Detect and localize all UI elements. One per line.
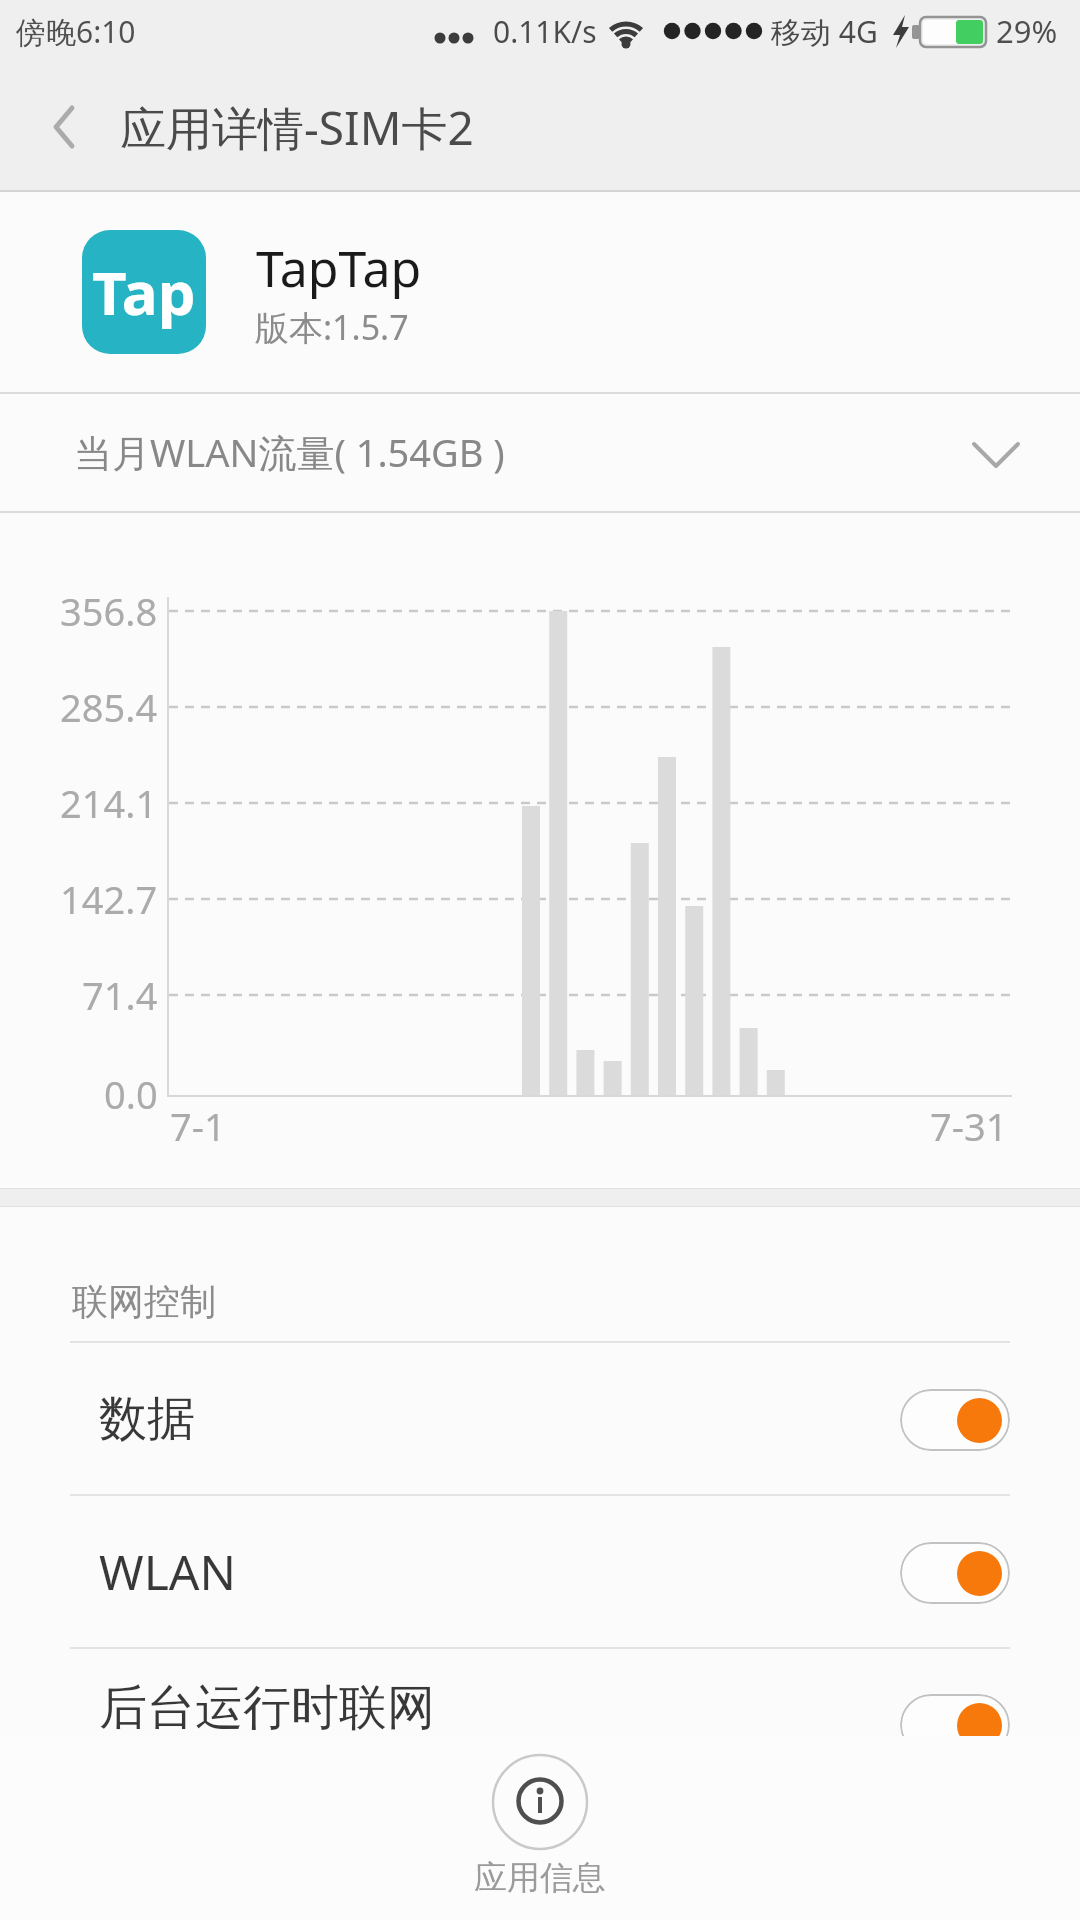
staticText: TapTap xyxy=(256,234,422,302)
staticText: 142.7 xyxy=(60,873,158,925)
staticText: 移动 4G xyxy=(771,11,878,52)
button[interactable]: 数据 xyxy=(0,1343,1080,1494)
button[interactable] xyxy=(900,1389,1010,1451)
button[interactable] xyxy=(900,1694,1010,1756)
staticText: 29% xyxy=(996,10,1058,52)
staticText: 356.8 xyxy=(60,585,158,637)
staticText: 0.11K/s xyxy=(493,11,597,52)
staticText: 214.1 xyxy=(60,777,158,829)
staticText: 应用信息 xyxy=(474,1857,606,1899)
staticText: 应用详情-SIM卡2 xyxy=(120,96,474,159)
button[interactable]: WLAN xyxy=(0,1496,1080,1647)
button[interactable]: 当月WLAN流量( 1.54GB ) xyxy=(0,393,1080,511)
staticText: 后台运行时联网 xyxy=(99,1678,435,1738)
button[interactable]: 后台运行时联网 xyxy=(0,1649,1080,1800)
staticText: 联网控制 xyxy=(72,1279,216,1324)
staticText: Tap xyxy=(92,251,196,333)
staticText: 71.4 xyxy=(82,969,158,1021)
staticText: 傍晚6:10 xyxy=(16,11,136,52)
staticText: 当月WLAN流量( 1.54GB ) xyxy=(74,426,505,478)
button[interactable] xyxy=(900,1542,1010,1604)
staticText: 7-31 xyxy=(930,1100,1008,1152)
button[interactable] xyxy=(489,1751,591,1853)
staticText: 版本:1.5.7 xyxy=(255,304,409,350)
staticText: 数据 xyxy=(99,1389,195,1449)
staticText: WLAN xyxy=(99,1539,236,1604)
staticText: 0.0 xyxy=(104,1068,158,1120)
staticText: 285.4 xyxy=(60,681,158,733)
staticText: 7-1 xyxy=(170,1100,226,1152)
button[interactable] xyxy=(25,92,95,162)
